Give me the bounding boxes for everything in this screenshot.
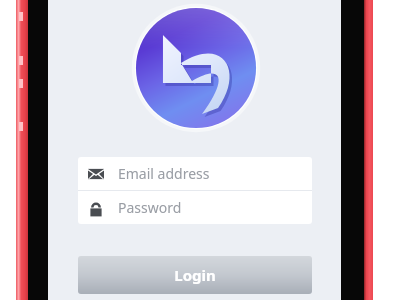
staticText: Password bbox=[118, 198, 182, 217]
staticText: Login bbox=[174, 265, 216, 285]
button[interactable]: Login bbox=[78, 256, 312, 294]
button[interactable]: Password bbox=[78, 191, 312, 224]
other: Email address bbox=[86, 164, 106, 184]
button[interactable]: Email address bbox=[78, 157, 312, 190]
other: Password bbox=[86, 198, 106, 218]
staticText: Email address bbox=[118, 164, 210, 183]
